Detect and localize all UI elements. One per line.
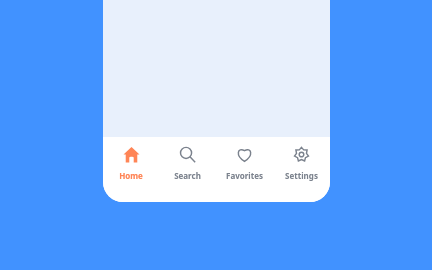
button[interactable]: Search bbox=[159, 137, 216, 202]
button[interactable]: Favorites bbox=[216, 137, 273, 202]
staticText: Favorites bbox=[226, 170, 263, 181]
staticText: Settings bbox=[285, 170, 318, 181]
staticText: Home bbox=[119, 170, 143, 181]
button[interactable]: Settings bbox=[273, 137, 330, 202]
staticText: Search bbox=[174, 170, 201, 181]
button[interactable]: Home bbox=[103, 137, 159, 202]
